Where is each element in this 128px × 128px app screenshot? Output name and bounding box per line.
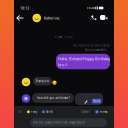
staticText: Cancel (81, 110, 90, 113)
button[interactable]: Voice call (88, 12, 99, 23)
button[interactable]: Cancel (80, 109, 91, 115)
staticText: Format (100, 110, 108, 113)
staticText: Send (93, 99, 100, 103)
staticText: 18:13 (20, 5, 29, 11)
staticText: 6 Mar, 19:22 (55, 35, 73, 39)
staticText: VoLTE (87, 6, 94, 10)
staticText: Thanks bro (35, 79, 49, 83)
staticText: bro :) (58, 62, 67, 67)
button[interactable]: Send (42, 109, 53, 115)
staticText: Haha, Belated Happy Birthday (58, 56, 110, 61)
button[interactable]: Format (95, 109, 108, 115)
staticText: Party (31, 110, 37, 113)
staticText: How did you celebrate? (36, 96, 69, 100)
staticText: You replied to their story (73, 44, 109, 47)
staticText: Story unavailable (85, 48, 107, 52)
button[interactable]: abc (15, 109, 24, 115)
staticText: Did the party unfold like a tapestry of (33, 121, 85, 124)
button[interactable]: Party (27, 109, 37, 115)
staticText: Send (46, 110, 53, 113)
button[interactable]: Did the party unfold like a tapestry of (30, 118, 107, 127)
button[interactable]: Video call (98, 12, 109, 23)
button[interactable]: Back (14, 12, 26, 24)
button[interactable]: Katherine (32, 12, 59, 24)
staticText: Katherine (43, 15, 59, 21)
staticText: 😊 (51, 81, 56, 85)
button[interactable]: Send (92, 99, 101, 103)
staticText: abc (18, 110, 22, 113)
